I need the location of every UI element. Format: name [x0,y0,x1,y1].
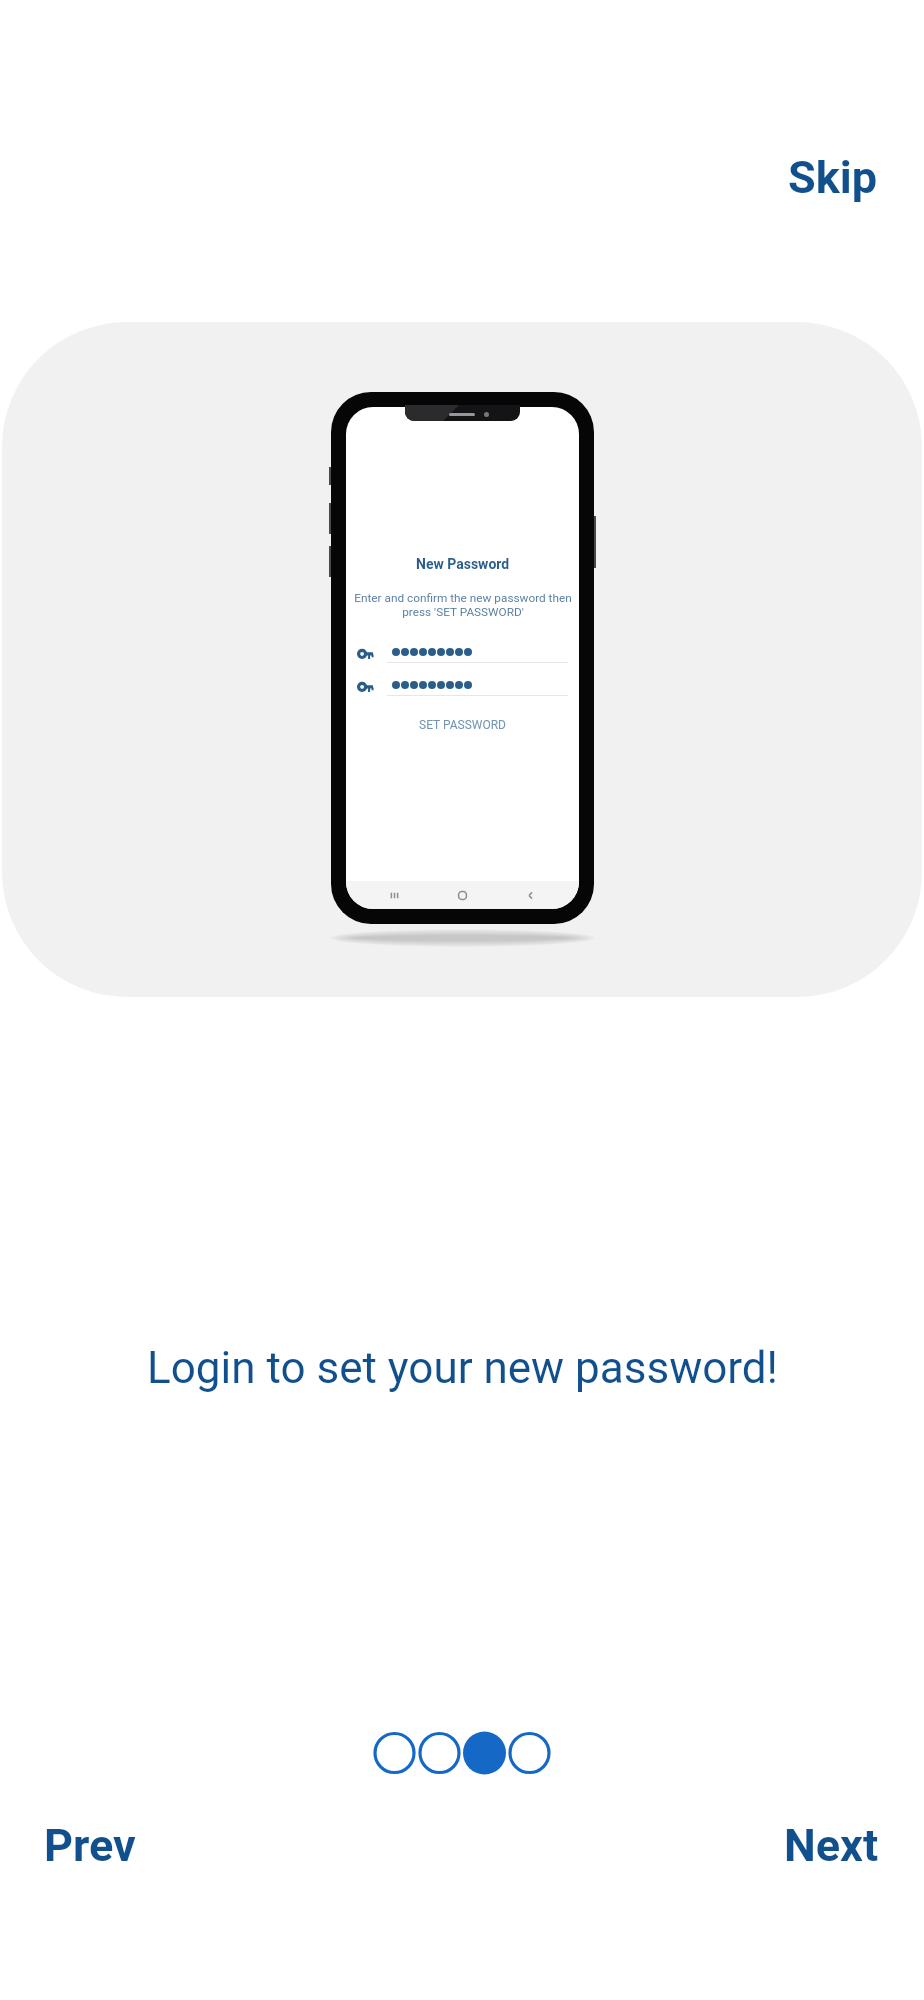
button[interactable]: Go to page ${index + 1} [417,1731,462,1775]
staticText: Prev [44,1819,136,1872]
button[interactable]: Skip [780,145,885,210]
staticText: Next [784,1819,879,1872]
button[interactable]: SET PASSWORD [413,716,512,734]
button[interactable]: Go to page ${index + 1} [462,1731,507,1775]
button[interactable]: Next [776,1811,887,1880]
button[interactable]: Prev [36,1811,144,1880]
staticText: SET PASSWORD [419,718,506,732]
button[interactable]: Go to page ${index + 1} [507,1731,552,1775]
staticText: Enter and confirm the new password then … [354,591,572,619]
staticText: Login to set your new password! [147,1342,778,1394]
button[interactable]: Go to page ${index + 1} [372,1731,417,1775]
staticText: Skip [788,151,877,204]
staticText: New Password [416,556,510,572]
